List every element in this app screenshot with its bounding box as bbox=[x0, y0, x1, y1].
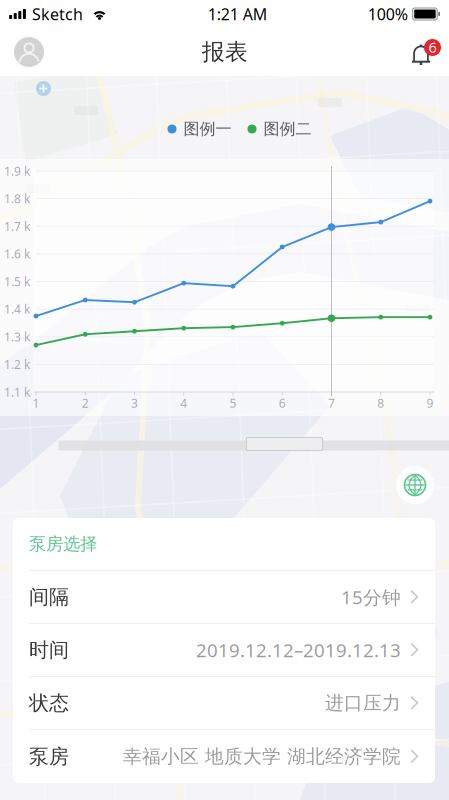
staticText: 1.5 k bbox=[4, 273, 30, 289]
staticText: 3 bbox=[131, 395, 138, 411]
staticText: 5 bbox=[229, 395, 236, 411]
staticText: Sketch bbox=[32, 3, 83, 25]
staticText: 状态 bbox=[29, 691, 69, 715]
staticText: 进口压力 bbox=[325, 691, 401, 714]
staticText: 时间 bbox=[29, 638, 69, 662]
staticText: 1.1 k bbox=[4, 384, 30, 400]
staticText: 泵房选择 bbox=[29, 533, 97, 555]
button[interactable]: Map layers bbox=[396, 466, 434, 504]
staticText: 100% bbox=[368, 3, 408, 25]
staticText: 9 bbox=[426, 395, 433, 411]
staticText: 间隔 bbox=[29, 585, 69, 609]
staticText: 1.2 k bbox=[4, 356, 30, 372]
button[interactable]: 时间 bbox=[13, 624, 435, 677]
staticText: 2 bbox=[82, 395, 89, 411]
staticText: 报表 bbox=[202, 38, 248, 66]
staticText: 泵房 bbox=[29, 744, 69, 769]
staticText: 幸福小区 地质大学 湖北经济学院 bbox=[123, 745, 401, 768]
staticText: 1.9 k bbox=[4, 163, 30, 179]
staticText: 1 bbox=[32, 395, 39, 411]
staticText: 6 bbox=[279, 395, 286, 411]
staticText: 4 bbox=[180, 395, 187, 411]
button[interactable]: 间隔 bbox=[13, 571, 435, 624]
staticText: 1:21 AM bbox=[208, 3, 268, 25]
staticText: 2019.12.12–2019.12.13 bbox=[196, 638, 401, 662]
staticText: 7 bbox=[328, 395, 335, 411]
button[interactable]: 泵房 bbox=[13, 730, 435, 783]
staticText: 1.4 k bbox=[4, 301, 30, 317]
button[interactable]: 状态 bbox=[13, 677, 435, 730]
button[interactable]: Profile bbox=[14, 37, 44, 67]
staticText: 图例一 bbox=[183, 119, 231, 139]
staticText: 图例二 bbox=[263, 119, 311, 139]
staticText: 1.3 k bbox=[4, 329, 30, 345]
button[interactable]: 泵房选择 bbox=[13, 518, 435, 570]
staticText: 15分钟 bbox=[341, 585, 401, 609]
button[interactable]: Notifications bbox=[406, 35, 436, 69]
staticText: 1.6 k bbox=[4, 246, 30, 262]
staticText: 8 bbox=[377, 395, 384, 411]
staticText: 6 bbox=[428, 37, 436, 57]
staticText: 1.8 k bbox=[4, 191, 30, 207]
staticText: 1.7 k bbox=[4, 218, 30, 234]
